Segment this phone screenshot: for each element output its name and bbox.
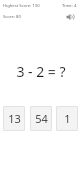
staticText: Highest Score: 130 [3,3,40,9]
button[interactable]: 13 [3,106,25,131]
button[interactable]: 1 [56,106,78,131]
staticText: 13 [8,111,21,126]
staticText: Score: 80 [3,14,21,20]
staticText: 1 [64,111,71,126]
button[interactable]: 54 [30,106,52,131]
button[interactable]: Toggle sound [65,12,74,21]
staticText: Time: 4 [62,3,77,9]
staticText: 54 [35,111,48,126]
staticText: 3 - 2 = ? [16,62,66,81]
